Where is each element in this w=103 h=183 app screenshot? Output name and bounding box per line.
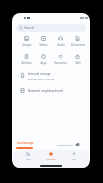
button[interactable]: Documents — [69, 36, 86, 47]
staticText: Apps — [40, 61, 47, 65]
button[interactable]: Local storage — [16, 141, 33, 149]
button[interactable]: Videos — [35, 36, 52, 47]
button[interactable]: Modified time — [57, 142, 80, 147]
staticText: Audio — [57, 43, 65, 47]
staticText: Search — [24, 26, 35, 30]
staticText: Storage used: 15.62 GB — [28, 77, 55, 80]
other: Upload — [75, 142, 80, 147]
button[interactable]: Audio — [52, 36, 69, 47]
staticText: Documents — [71, 43, 85, 47]
staticText: Videos — [39, 43, 48, 47]
staticText: Safe — [75, 61, 81, 65]
button[interactable]: Archives — [18, 54, 35, 65]
staticText: Modified time — [57, 143, 73, 146]
button[interactable]: Transfer — [39, 150, 62, 168]
staticText: Images — [22, 43, 32, 47]
staticText: Local storage — [17, 141, 34, 145]
button[interactable]: Internal storage — [12, 68, 90, 83]
staticText: Network neighbourhood — [28, 89, 63, 93]
staticText: Internal storage — [28, 72, 51, 76]
staticText: Me — [72, 157, 76, 160]
button[interactable]: Images — [18, 36, 35, 47]
staticText: Transfer — [46, 157, 56, 160]
staticText: Archives — [21, 61, 32, 65]
button[interactable]: Search — [16, 24, 86, 32]
button[interactable]: Apps — [35, 54, 52, 65]
button[interactable]: Favourites — [52, 54, 69, 65]
button[interactable]: Network neighbourhood — [12, 83, 90, 98]
staticText: Favourites — [54, 61, 67, 65]
button[interactable]: Me — [62, 150, 85, 168]
staticText: Files — [26, 157, 31, 160]
button[interactable]: Safe — [69, 54, 86, 65]
button[interactable]: Files — [17, 150, 39, 168]
